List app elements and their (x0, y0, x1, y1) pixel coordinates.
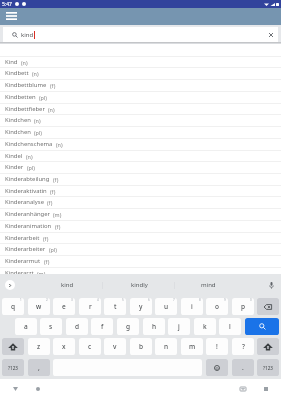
button[interactable]: Kinderanalyse (0, 196, 281, 208)
button[interactable]: More suggestions (4, 279, 16, 291)
staticText: e (62, 302, 66, 311)
button[interactable]: i (181, 298, 203, 315)
staticText: ?123 (263, 365, 273, 371)
button[interactable]: l (219, 318, 241, 335)
button[interactable]: Shift (257, 338, 279, 355)
staticText: (m) (53, 211, 62, 218)
staticText: u (164, 302, 169, 311)
button[interactable]: p (232, 298, 254, 315)
staticText: 7 (173, 298, 175, 302)
button[interactable]: Kinder (0, 161, 281, 173)
staticText: Kindel (5, 152, 23, 160)
button[interactable]: c (79, 338, 101, 355)
button[interactable]: Emoji (206, 359, 228, 376)
button[interactable]: b (130, 338, 152, 355)
staticText: (n) (32, 70, 39, 77)
staticText: x (62, 342, 66, 351)
staticText: (f) (47, 199, 53, 206)
button[interactable]: Kindchen (0, 126, 281, 138)
button[interactable]: , (28, 359, 50, 376)
button[interactable]: s (40, 318, 62, 335)
button[interactable]: . (232, 359, 254, 376)
staticText: . (242, 363, 244, 372)
button[interactable]: y (130, 298, 152, 315)
staticText: (n) (56, 141, 63, 148)
button[interactable]: Kind (0, 56, 281, 68)
staticText: (pl) (27, 164, 35, 171)
staticText: Kinder (5, 163, 24, 171)
button[interactable]: e (53, 298, 75, 315)
button[interactable]: Kinderarmut (0, 255, 281, 267)
staticText: (f) (53, 176, 59, 183)
button[interactable]: Kinderaktivatin (0, 185, 281, 197)
staticText: Kindchen (5, 116, 31, 124)
button[interactable]: Kindbett (0, 67, 281, 79)
button[interactable]: q (2, 298, 24, 315)
button[interactable]: Kinderarbeit (0, 232, 281, 244)
button[interactable]: Back (9, 383, 21, 395)
button[interactable]: Kindbettblume (0, 79, 281, 91)
button[interactable]: v (104, 338, 126, 355)
staticText: (pl) (39, 94, 47, 101)
button[interactable]: Home (32, 383, 44, 395)
button[interactable]: j (168, 318, 190, 335)
button[interactable]: m (181, 338, 203, 355)
button[interactable]: Kindel (0, 150, 281, 162)
button[interactable]: o (206, 298, 228, 315)
staticText: (pl) (34, 129, 42, 136)
staticText: z (37, 342, 41, 351)
button[interactable]: Kinderabteilung (0, 173, 281, 185)
staticText: (f) (55, 223, 61, 230)
button[interactable]: Open navigation menu (1, 8, 22, 25)
staticText: q (11, 302, 16, 311)
button[interactable]: mind (182, 274, 234, 296)
button[interactable]: Kindbetten (0, 91, 281, 103)
button[interactable]: z (28, 338, 50, 355)
button[interactable]: ! (206, 338, 228, 355)
button[interactable]: ?123 (257, 359, 279, 376)
button[interactable]: x (53, 338, 75, 355)
button[interactable]: kindly (113, 274, 165, 296)
button[interactable]: Recent apps (260, 383, 272, 395)
button[interactable]: u (155, 298, 177, 315)
button[interactable]: h (143, 318, 165, 335)
staticText: f (101, 322, 104, 331)
button[interactable]: kind (3, 27, 278, 42)
button[interactable]: t (104, 298, 126, 315)
staticText: kind (21, 31, 34, 39)
button[interactable]: k (194, 318, 216, 335)
button[interactable]: ? (232, 338, 254, 355)
button[interactable]: Kinderanhänger (0, 208, 281, 220)
button[interactable]: kind (41, 274, 93, 296)
staticText: , (38, 363, 40, 372)
button[interactable]: Kindbettfieber (0, 103, 281, 115)
button[interactable]: Kindchen (0, 114, 281, 126)
button[interactable]: d (66, 318, 88, 335)
button[interactable]: Clear search (265, 29, 277, 41)
staticText: Kindbett (5, 69, 29, 77)
staticText: (pl) (49, 246, 57, 253)
button[interactable]: Search (245, 318, 279, 335)
button[interactable]: Kindchenschema (0, 138, 281, 150)
staticText: Kindchen (5, 128, 31, 136)
button[interactable]: Kinderarzt (0, 267, 281, 279)
button[interactable]: w (28, 298, 50, 315)
button[interactable]: ?123 (2, 359, 24, 376)
button[interactable]: f (91, 318, 113, 335)
button[interactable]: Voice input (265, 279, 277, 291)
button[interactable]: n (155, 338, 177, 355)
staticText: (m) (37, 270, 46, 277)
button[interactable]: Kinderarbeiter (0, 243, 281, 255)
button[interactable]: Backspace (257, 298, 279, 315)
staticText: o (215, 302, 219, 311)
staticText: (n) (21, 59, 28, 66)
button[interactable]: Switch keyboard (237, 383, 249, 395)
staticText: Kinderaktivatin (5, 187, 47, 195)
button[interactable]: Kinderanimation (0, 220, 281, 232)
staticText: (f) (43, 235, 49, 242)
button[interactable]: r (79, 298, 101, 315)
button[interactable]: a (15, 318, 37, 335)
button[interactable]: g (117, 318, 139, 335)
button[interactable]: Shift (2, 338, 24, 355)
